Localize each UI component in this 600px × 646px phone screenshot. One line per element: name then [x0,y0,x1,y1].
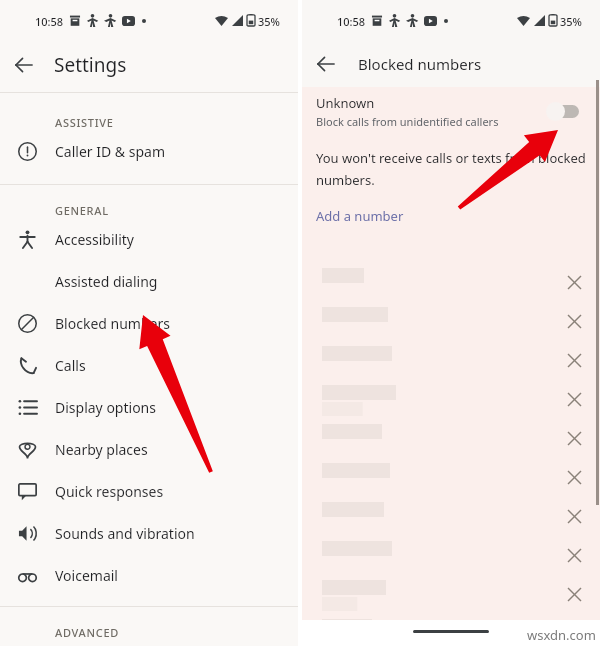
staticText: ADVANCED [55,625,119,640]
button[interactable]: Accessibility [0,218,298,260]
staticText: Sounds and vibration [55,524,195,543]
staticText: Unknown [316,94,375,112]
staticText: Block calls from unidentified callers [316,114,499,129]
staticText: Quick responses [55,482,164,501]
staticText: Accessibility [55,230,134,249]
staticText: Add a number [316,207,404,225]
staticText: Calls [55,356,86,375]
button[interactable]: Remove blocked number [560,307,588,335]
button[interactable]: Calls [0,344,298,386]
button[interactable]: Remove blocked number [560,502,588,530]
staticText: Blocked numbers [55,314,170,333]
button[interactable]: Blocked numbers [0,302,298,344]
button[interactable]: Display options [0,386,298,428]
button[interactable]: Remove blocked number [560,580,588,608]
button[interactable]: Block unknown callers toggle [546,99,586,123]
button[interactable]: Assisted dialing [0,260,298,302]
staticText: Blocked numbers [358,54,482,74]
button[interactable]: Nearby places [0,428,298,470]
staticText: 35% [258,14,280,29]
button[interactable]: Quick responses [0,470,298,512]
staticText: Nearby places [55,440,148,459]
button[interactable]: Remove blocked number [560,463,588,491]
staticText: Display options [55,398,156,417]
button[interactable]: Remove blocked number [560,346,588,374]
button[interactable]: Remove blocked number [560,268,588,296]
staticText: GENERAL [55,203,109,218]
staticText: Caller ID & spam [55,142,165,161]
staticText: ASSISTIVE [55,115,114,130]
button[interactable]: Remove blocked number [560,619,588,646]
staticText: wsxdn.com [527,626,596,644]
button[interactable]: Unknown [302,87,600,135]
button[interactable]: Voicemail [0,554,298,596]
button[interactable]: Add a number [316,207,404,225]
button[interactable]: Caller ID & spam [0,130,298,172]
button[interactable]: Back [302,40,350,87]
staticText: Settings [54,52,127,78]
button[interactable]: Remove blocked number [560,385,588,413]
staticText: You won't receive calls or texts from bl… [316,149,586,189]
button[interactable]: Remove blocked number [560,424,588,452]
staticText: Assisted dialing [55,272,158,291]
staticText: 10:58 [35,14,64,29]
staticText: 35% [560,14,582,29]
button[interactable]: Sounds and vibration [0,512,298,554]
staticText: Voicemail [55,566,118,585]
button[interactable]: Back [0,41,48,89]
staticText: 10:58 [337,14,366,29]
button[interactable]: Remove blocked number [560,541,588,569]
